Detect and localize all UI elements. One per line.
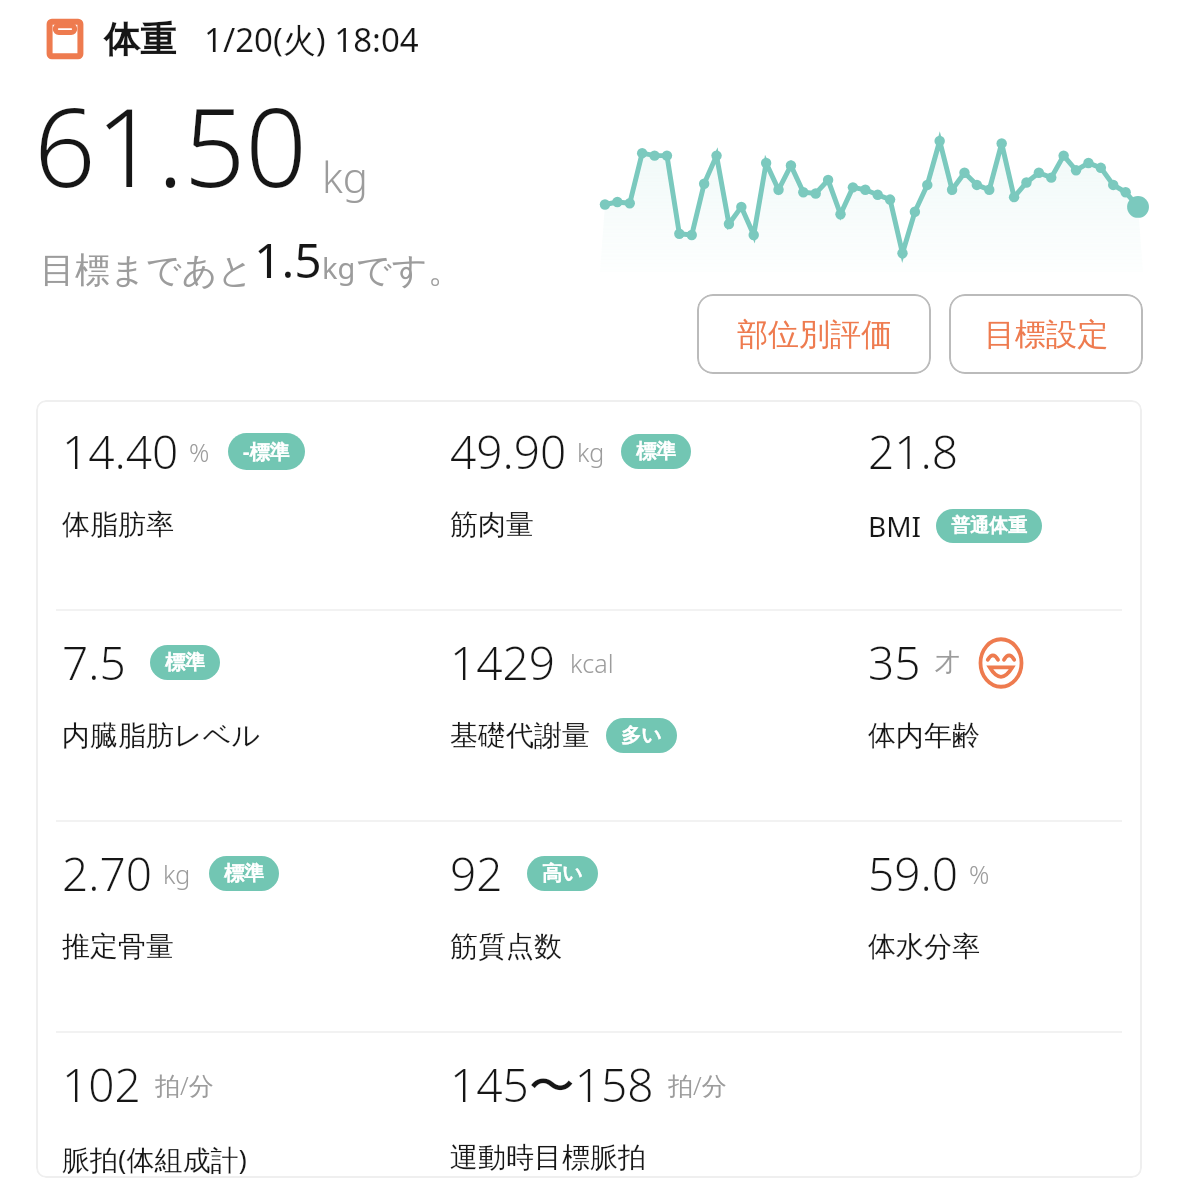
staticText: 目標まであと xyxy=(40,248,254,292)
staticText: 脈拍(体組成計) xyxy=(62,1140,247,1178)
staticText: 体内年齢 xyxy=(868,718,980,753)
staticText: 2.70 xyxy=(62,842,153,905)
staticText: 体重 xyxy=(104,17,176,62)
button[interactable]: 部位別評価 xyxy=(697,294,931,374)
staticText: 体脂肪率 xyxy=(62,507,174,542)
staticText: 才 xyxy=(935,647,960,678)
staticText: % xyxy=(189,435,210,469)
staticText: です。 xyxy=(356,248,463,292)
staticText: 部位別評価 xyxy=(737,315,892,354)
staticText: % xyxy=(969,857,990,891)
staticText: 59.0 xyxy=(868,842,959,905)
staticText: 49.90 xyxy=(450,420,567,483)
staticText: 体水分率 xyxy=(868,929,980,964)
staticText: -標準 xyxy=(243,438,290,465)
staticText: kcal xyxy=(570,646,614,680)
staticText: 筋肉量 xyxy=(450,507,534,542)
staticText: 運動時目標脈拍 xyxy=(450,1140,646,1175)
staticText: 標準 xyxy=(165,650,205,675)
staticText: 35 xyxy=(868,631,921,694)
staticText: 145〜158 xyxy=(450,1053,654,1116)
staticText: 目標設定 xyxy=(984,315,1108,354)
staticText: 標準 xyxy=(636,439,676,464)
staticText: 推定骨量 xyxy=(62,929,174,964)
staticText: 1.5 xyxy=(254,227,322,292)
staticText: 筋質点数 xyxy=(450,929,562,964)
staticText: 21.8 xyxy=(868,420,959,483)
staticText: 高い xyxy=(542,861,583,886)
staticText: 普通体重 xyxy=(951,514,1027,538)
staticText: 1/20(火) 18:04 xyxy=(204,17,419,62)
staticText: kg xyxy=(322,248,356,287)
button[interactable]: 目標設定 xyxy=(949,294,1143,374)
staticText: 7.5 xyxy=(62,631,126,694)
staticText: 内臓脂肪レベル xyxy=(62,718,260,753)
staticText: 14.40 xyxy=(62,420,179,483)
staticText: 標準 xyxy=(224,861,264,886)
staticText: kg xyxy=(163,857,191,891)
staticText: kg xyxy=(577,435,605,469)
staticText: kg xyxy=(322,148,368,205)
staticText: 拍/分 xyxy=(155,1068,214,1102)
staticText: 1429 xyxy=(450,631,556,694)
staticText: 61.50 xyxy=(34,72,308,219)
staticText: 基礎代謝量 xyxy=(450,718,590,753)
staticText: 拍/分 xyxy=(668,1068,727,1102)
staticText: BMI xyxy=(868,507,922,545)
staticText: 102 xyxy=(62,1053,141,1116)
staticText: 多い xyxy=(621,723,662,748)
staticText: 92 xyxy=(450,842,503,905)
